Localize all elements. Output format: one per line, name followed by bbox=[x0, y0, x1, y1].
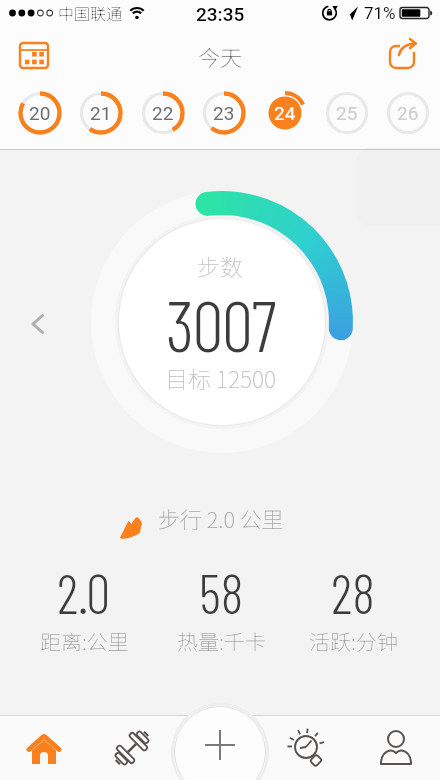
button[interactable]: 20 bbox=[16, 89, 64, 137]
staticText: 58 bbox=[199, 560, 244, 625]
button[interactable] bbox=[22, 308, 54, 340]
staticText: 3007 bbox=[166, 282, 275, 366]
button[interactable] bbox=[384, 35, 424, 75]
staticText: 目标 12500 bbox=[165, 361, 276, 394]
staticText: 步行 2.0 公里 bbox=[158, 502, 284, 534]
staticText: 26 bbox=[397, 102, 419, 124]
staticText: 25 bbox=[336, 102, 358, 124]
button[interactable]: 22 bbox=[139, 89, 187, 137]
staticText: 21 bbox=[90, 102, 112, 124]
staticText: 距离:公里 bbox=[40, 626, 129, 656]
button[interactable] bbox=[104, 720, 160, 776]
button[interactable] bbox=[117, 514, 143, 540]
button[interactable]: 25 bbox=[323, 89, 371, 137]
button[interactable] bbox=[368, 720, 424, 776]
staticText: 23 bbox=[213, 102, 235, 124]
staticText: 活跃:分钟 bbox=[309, 626, 398, 656]
button[interactable] bbox=[280, 718, 336, 774]
staticText: 22 bbox=[152, 102, 174, 124]
button[interactable]: 2.0 bbox=[9, 560, 159, 656]
staticText: 28 bbox=[331, 560, 375, 625]
staticText: 71% bbox=[364, 3, 396, 23]
button[interactable] bbox=[14, 35, 54, 75]
button[interactable]: 24 bbox=[261, 89, 309, 137]
button[interactable] bbox=[174, 706, 266, 780]
button[interactable]: 58 bbox=[146, 560, 296, 656]
button[interactable]: 21 bbox=[77, 89, 125, 137]
button[interactable]: 23 bbox=[200, 89, 248, 137]
staticText: 步数 bbox=[197, 249, 243, 282]
staticText: 24 bbox=[274, 102, 296, 124]
button[interactable] bbox=[16, 720, 72, 776]
staticText: 中国联通 bbox=[58, 1, 123, 24]
staticText: 今天 bbox=[198, 40, 243, 72]
staticText: 23:35 bbox=[196, 3, 245, 25]
staticText: 热量:千卡 bbox=[177, 626, 266, 656]
button[interactable]: 26 bbox=[384, 89, 432, 137]
button[interactable]: 28 bbox=[278, 560, 428, 656]
staticText: 20 bbox=[29, 102, 51, 124]
staticText: 2.0 bbox=[57, 560, 111, 625]
